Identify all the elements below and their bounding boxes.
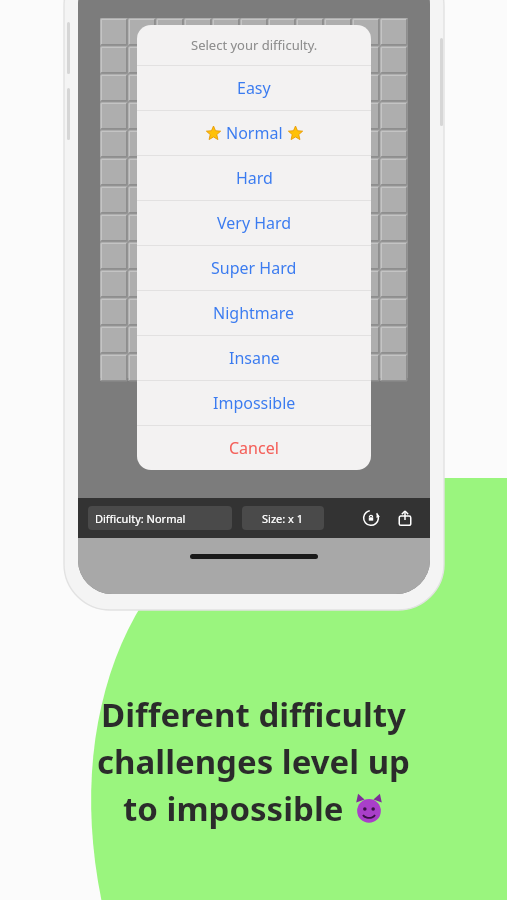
- staticText: Hard: [236, 167, 273, 189]
- button[interactable]: Easy: [137, 66, 371, 110]
- staticText: Select your difficulty.: [191, 36, 318, 54]
- staticText: Cancel: [229, 437, 279, 459]
- button[interactable]: Cancel: [137, 426, 371, 470]
- button[interactable]: Super Hard: [137, 246, 371, 290]
- button[interactable]: Very Hard: [137, 201, 371, 245]
- button[interactable]: Share: [392, 505, 418, 531]
- staticText: Insane: [229, 347, 280, 369]
- staticText: Size: x 1: [262, 511, 304, 526]
- staticText: Difficulty: Normal: [95, 511, 186, 526]
- button[interactable]: Normal: [137, 111, 371, 155]
- staticText: challenges level up: [97, 739, 410, 784]
- staticText: Normal: [226, 122, 283, 144]
- staticText: Different difficulty: [101, 692, 406, 737]
- button[interactable]: Nightmare: [137, 291, 371, 335]
- staticText: Impossible: [213, 392, 296, 414]
- staticText: Very Hard: [217, 212, 292, 234]
- staticText: Nightmare: [213, 302, 295, 324]
- staticText: to impossible: [123, 786, 353, 831]
- button[interactable]: Size: x 1: [242, 506, 324, 530]
- button[interactable]: Rotation lock: [358, 505, 384, 531]
- button[interactable]: Impossible: [137, 381, 371, 425]
- button[interactable]: Insane: [137, 336, 371, 380]
- staticText: Easy: [237, 77, 271, 99]
- staticText: Super Hard: [211, 257, 297, 279]
- button[interactable]: Hard: [137, 156, 371, 200]
- button[interactable]: Difficulty: Normal: [88, 506, 232, 530]
